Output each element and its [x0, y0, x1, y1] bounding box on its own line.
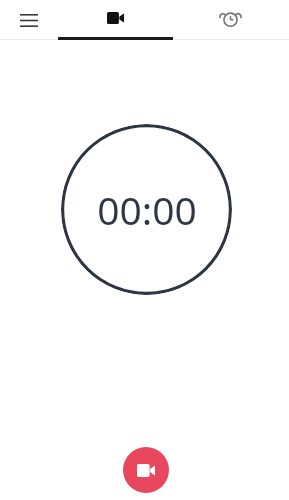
- button[interactable]: Menu: [0, 0, 58, 40]
- button[interactable]: 00:00: [61, 124, 232, 295]
- button[interactable]: Alarm: [174, 0, 284, 40]
- staticText: 00:00: [97, 183, 197, 236]
- button[interactable]: Video recorder tab: [58, 0, 173, 40]
- button[interactable]: Start recording: [123, 447, 169, 493]
